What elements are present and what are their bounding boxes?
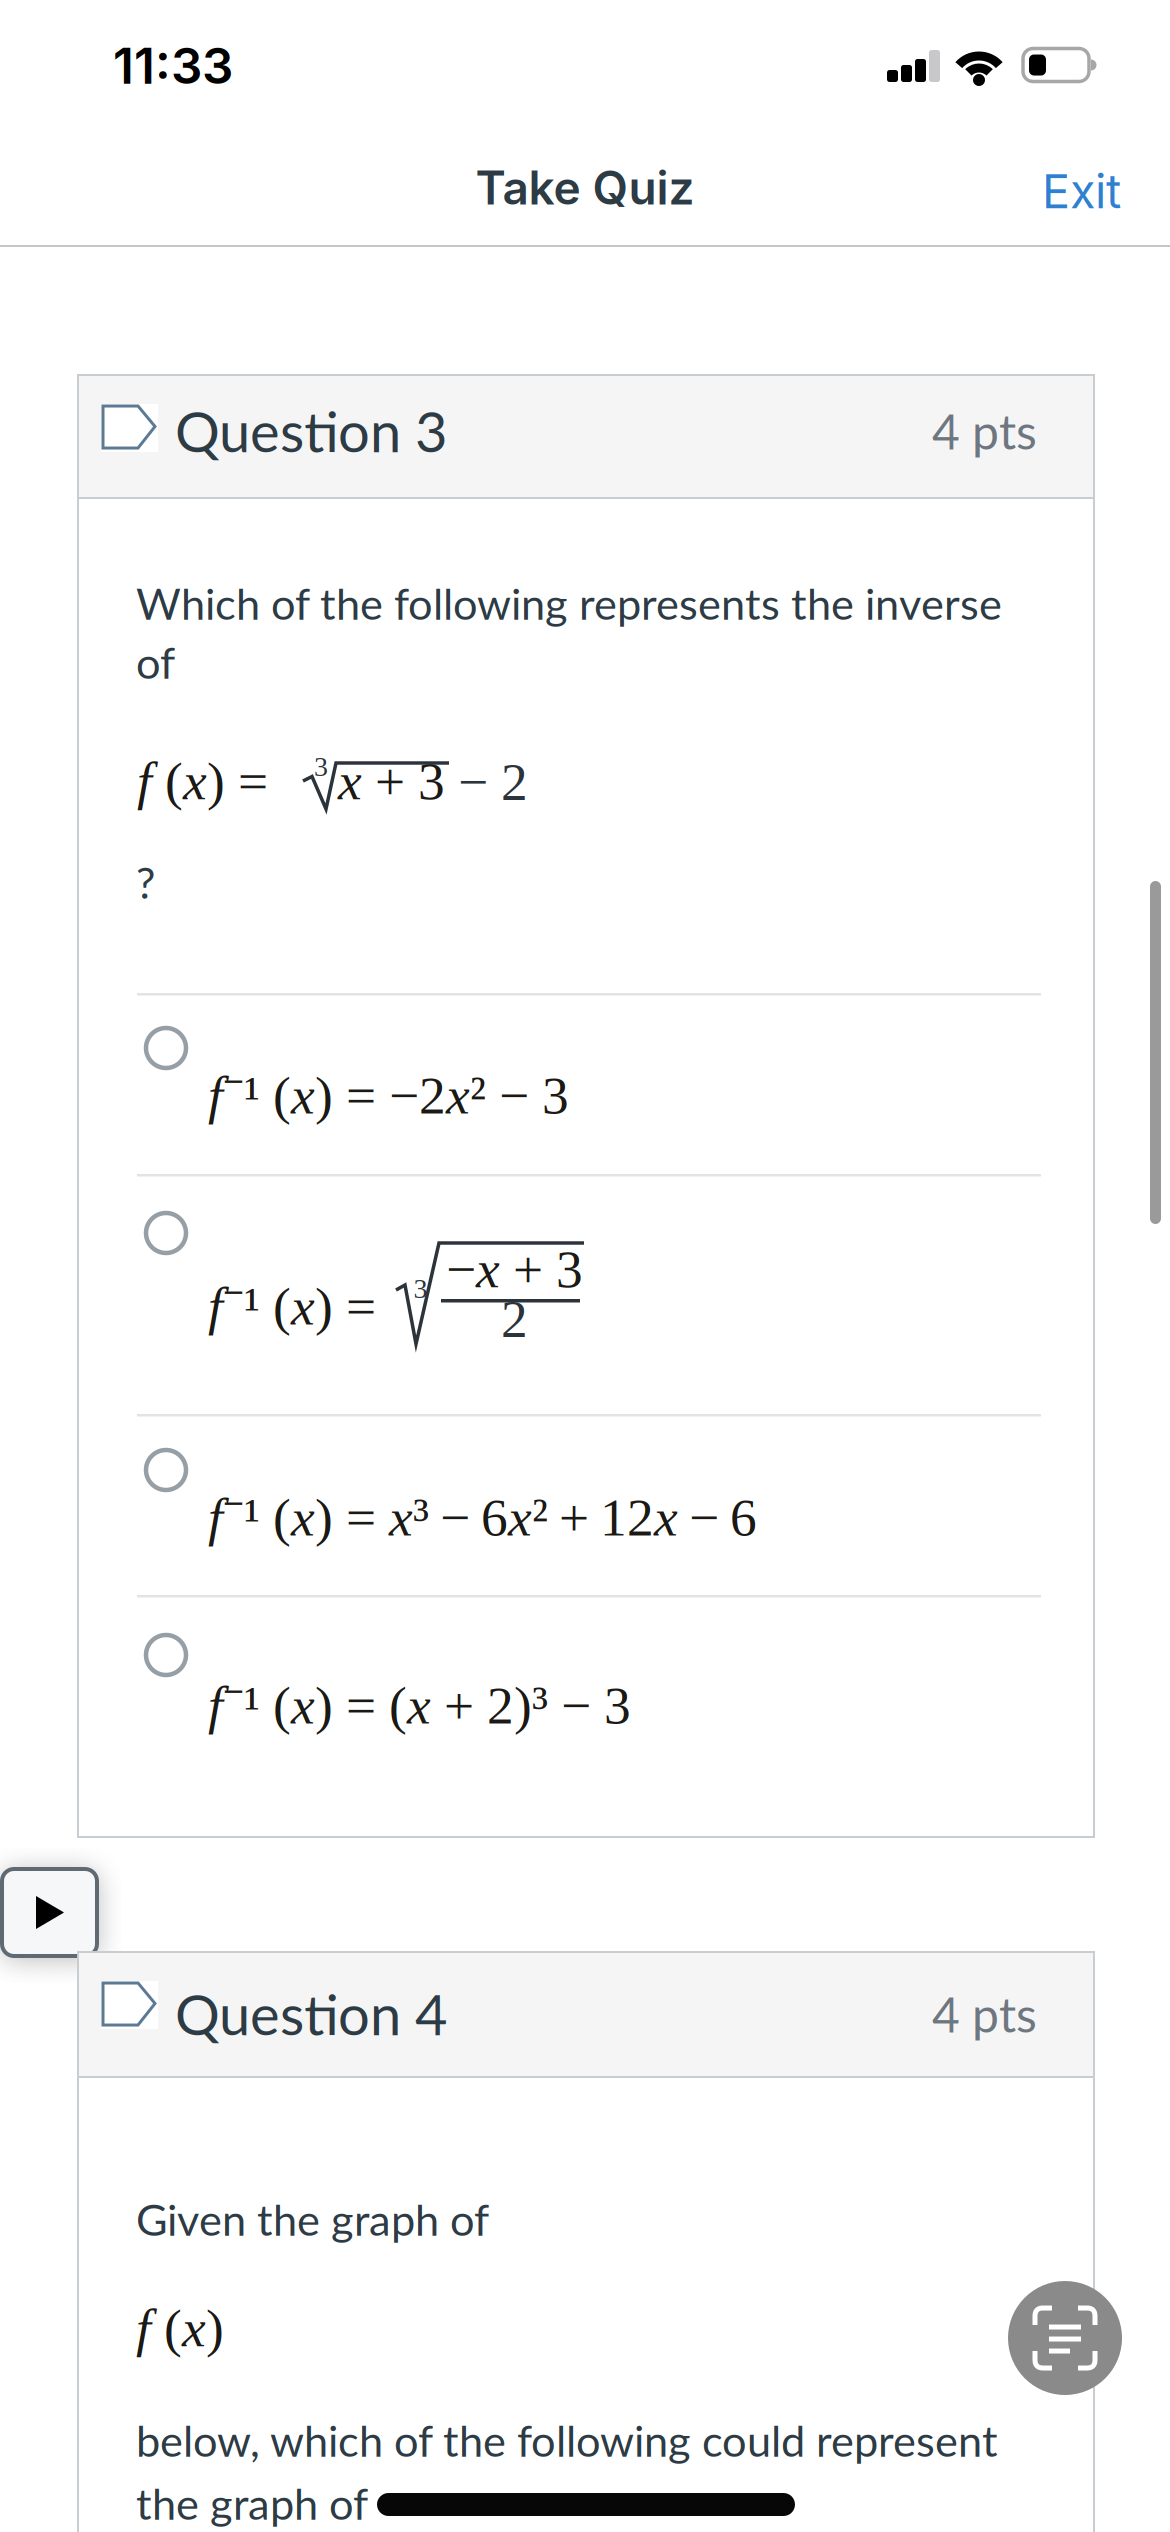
staticText: ? — [136, 856, 155, 908]
button[interactable]: f⁻¹ (x) = x³ − 6x² + 12x − 6 — [78, 1416, 1094, 1595]
staticText: Question 4 — [175, 1980, 447, 2047]
staticText: f (x) — [136, 2299, 224, 2357]
staticText: f (x) = — [137, 752, 281, 810]
staticText: Given the graph of — [136, 2193, 489, 2245]
staticText: Which of the following represents the in… — [136, 577, 1002, 629]
staticText: 4 pts — [932, 1985, 1037, 2043]
staticText: Question 3 — [175, 397, 447, 464]
staticText: Exit — [1042, 163, 1121, 219]
staticText: below, which of the following could repr… — [136, 2414, 998, 2466]
button[interactable]: f⁻¹ (x) = — [78, 1176, 1094, 1414]
staticText: f⁻¹ (x) = −2x² − 3 — [208, 1057, 569, 1128]
staticText: 11:33 — [113, 36, 233, 96]
staticText: Take Quiz — [475, 160, 694, 216]
staticText: 3 — [413, 1273, 427, 1304]
staticText: of — [136, 636, 175, 688]
button[interactable]: Exit — [1024, 151, 1139, 231]
staticText: the graph of — [136, 2477, 368, 2529]
button[interactable] — [1008, 2281, 1122, 2395]
staticText: f⁻¹ (x) = x³ − 6x² + 12x − 6 — [208, 1479, 757, 1550]
button[interactable] — [2, 1869, 97, 1956]
staticText: x + 3 — [338, 752, 445, 810]
button[interactable]: f⁻¹ (x) = (x + 2)³ − 3 — [78, 1597, 1094, 1837]
staticText: f⁻¹ (x) = (x + 2)³ − 3 — [208, 1667, 631, 1738]
staticText: f⁻¹ (x) = — [208, 1268, 389, 1339]
staticText: 3 — [314, 751, 328, 782]
button[interactable]: f⁻¹ (x) = −2x² − 3 — [78, 995, 1094, 1174]
staticText: − 2 — [458, 752, 528, 812]
staticText: 4 pts — [932, 402, 1037, 460]
staticText: −x + 3 — [446, 1240, 583, 1298]
staticText: 2 — [501, 1289, 528, 1349]
